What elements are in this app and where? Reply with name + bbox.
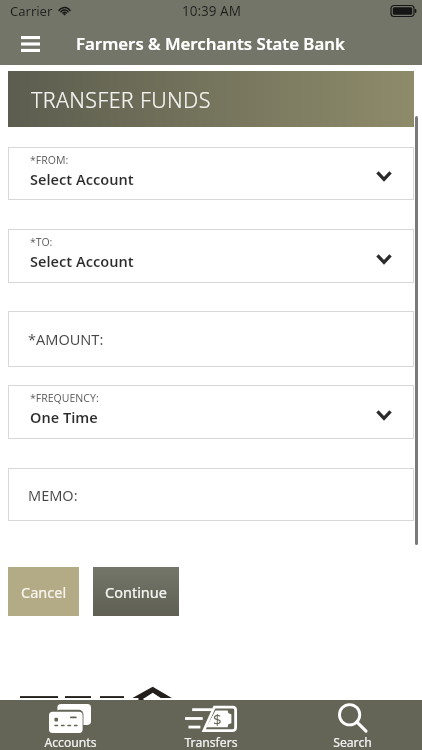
staticText: *FREQUENCY: [30,391,99,405]
staticText: MEMO: [28,485,78,505]
button[interactable]: *FROM: [8,147,414,200]
button[interactable]: *AMOUNT: [8,311,414,367]
staticText: *FROM: [30,153,69,167]
staticText: *TO: [30,235,53,249]
button[interactable]: Search [297,700,407,750]
button[interactable]: Menu [14,27,47,60]
button[interactable]: Continue [93,567,179,616]
button[interactable]: *FREQUENCY: [8,385,414,439]
staticText: Select Account [30,251,134,271]
staticText: Search [333,734,372,750]
staticText: *AMOUNT: [28,329,104,349]
staticText: Cancel [21,582,67,602]
button[interactable]: MEMO: [8,468,414,521]
staticText: Farmers & Merchants State Bank [76,32,345,55]
staticText: TRANSFER FUNDS [31,85,211,114]
button[interactable]: *TO: [8,229,414,283]
button[interactable]: Accounts [15,700,125,750]
button[interactable]: Cancel [8,567,79,616]
staticText: One Time [30,407,98,427]
staticText: $ [213,709,222,729]
staticText: Carrier [10,2,53,20]
staticText: Continue [105,582,167,602]
staticText: Accounts [44,734,97,750]
staticText: Select Account [30,169,134,189]
staticText: Transfers [184,734,238,750]
staticText: 10:39 AM [182,2,241,20]
button[interactable]: $ [156,700,266,750]
